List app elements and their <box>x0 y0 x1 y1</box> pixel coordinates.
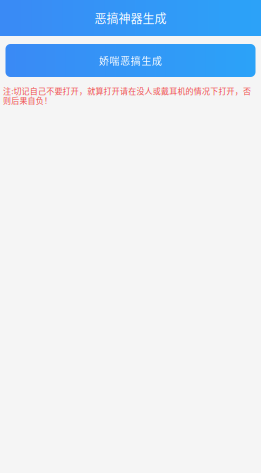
button[interactable]: 娇喘恶搞生成 <box>5 44 255 77</box>
staticText: 恶搞神器生成 <box>94 9 166 27</box>
staticText: 娇喘恶搞生成 <box>99 53 162 68</box>
staticText: 注:切记自己不要打开，就算打开请在没人或戴耳机的情况下打开，否则后果自负！ <box>3 85 251 106</box>
